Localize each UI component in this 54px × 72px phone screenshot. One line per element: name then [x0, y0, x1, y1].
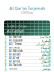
staticText: Al-Anfal: [9, 60, 20, 63]
staticText: الأنفال: [40, 59, 50, 64]
staticText: 6: [5, 53, 7, 56]
staticText: آل عمران: [35, 42, 50, 46]
staticText: 8: [5, 60, 7, 63]
staticText: البقرة: [41, 38, 50, 43]
staticText: 3: [5, 42, 7, 46]
staticText: التوبة: [42, 63, 50, 67]
staticText: يونس: [41, 66, 50, 71]
staticText: Al-Fatihah: [9, 35, 22, 39]
staticText: الأعراف: [38, 56, 50, 60]
staticText: 10: [5, 65, 7, 72]
staticText: Yunus: [9, 67, 17, 70]
staticText: An-Nisa': [9, 46, 20, 49]
staticText: النساء: [40, 45, 50, 50]
staticText: Al-Ma'idah: [9, 49, 23, 53]
staticText: Al Qur'an Terjemah: [9, 6, 44, 11]
staticText: 7: [5, 56, 7, 60]
staticText: 2: [5, 39, 7, 42]
staticText: At-Taubah: [9, 63, 22, 67]
staticText: Al-Baqarah: [9, 39, 23, 42]
staticText: الفاتحة: [39, 35, 50, 39]
staticText: المائدة: [40, 49, 50, 53]
staticText: Al-Fatihah: [7, 28, 24, 33]
staticText: 5: [5, 49, 7, 53]
staticText: Al-A'raf: [9, 56, 19, 60]
staticText: 1: [5, 35, 7, 39]
staticText: Terakhir dibaca: [7, 25, 26, 28]
staticText: Al-An'am: [9, 53, 20, 56]
staticText: Offline: [21, 10, 33, 15]
staticText: الأنعام: [41, 52, 50, 57]
staticText: 4: [5, 46, 7, 49]
staticText: Ali 'Imran: [9, 42, 22, 46]
staticText: 9: [5, 63, 7, 67]
